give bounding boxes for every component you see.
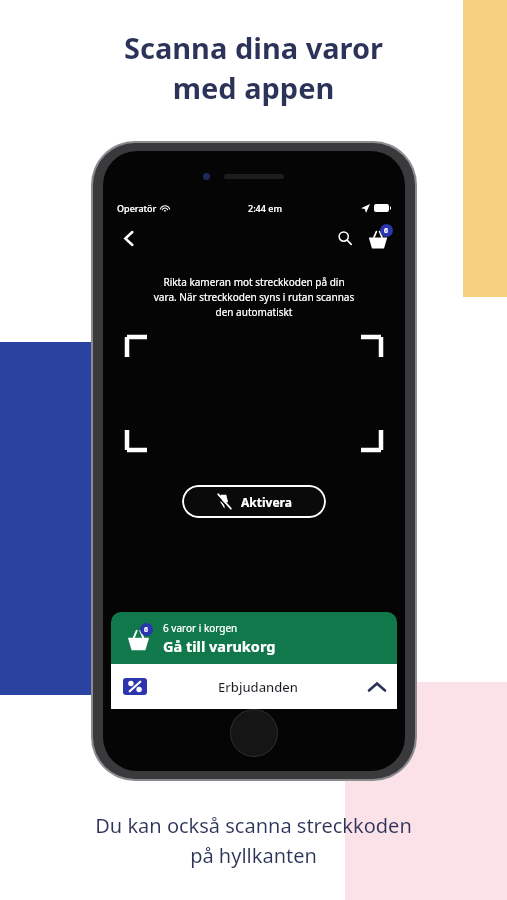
staticText: 2:44 em bbox=[248, 202, 282, 214]
staticText: Operatör bbox=[117, 202, 157, 214]
staticText: Du kan också scanna streckkoden på hyllk… bbox=[0, 812, 507, 869]
staticText: Erbjudanden bbox=[147, 678, 369, 696]
button[interactable]: 6 bbox=[111, 612, 397, 664]
staticText: 6 bbox=[144, 625, 149, 635]
button[interactable]: Back bbox=[116, 225, 142, 251]
staticText: 6 varor i korgen bbox=[163, 621, 238, 635]
staticText: Rikta kameran mot streckkoden på din var… bbox=[113, 275, 395, 319]
staticText: 6 bbox=[384, 226, 389, 236]
button[interactable]: Search bbox=[332, 225, 358, 251]
staticText: Gå till varukorg bbox=[163, 636, 276, 656]
button[interactable]: Erbjudanden bbox=[111, 664, 397, 709]
button[interactable]: Shopping basket, 6 items bbox=[364, 224, 392, 252]
button[interactable]: Aktivera bbox=[182, 485, 326, 518]
staticText: Aktivera bbox=[241, 494, 292, 510]
staticText: Scanna dina varor med appen bbox=[0, 28, 507, 108]
